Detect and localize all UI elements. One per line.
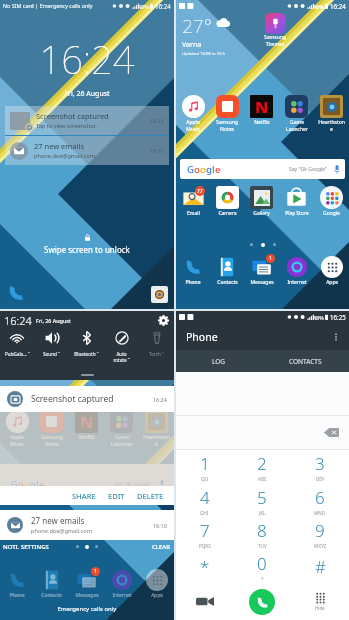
staticText: MNO xyxy=(314,510,326,516)
button[interactable]: Screenshot captured xyxy=(7,386,167,412)
button[interactable]: 1 xyxy=(176,450,233,484)
button[interactable]: # xyxy=(291,550,349,583)
button[interactable]: Game Launcher xyxy=(279,95,314,132)
button[interactable]: Samsung Notes xyxy=(210,95,244,132)
staticText: 6 xyxy=(315,486,325,509)
staticText: Fri, 26 August xyxy=(36,317,71,324)
button[interactable]: Apps xyxy=(139,569,174,599)
staticText: Torch ˇ xyxy=(149,351,164,357)
staticText: phone.doe@gmail.com xyxy=(31,527,92,535)
button[interactable]: Game Launcher xyxy=(104,412,139,447)
button[interactable]: 1 xyxy=(69,569,104,599)
button[interactable]: 0 xyxy=(233,550,291,583)
staticText: DEF xyxy=(316,476,325,482)
staticText: o xyxy=(18,478,24,486)
staticText: Google xyxy=(323,210,340,217)
button[interactable]: * xyxy=(176,550,233,583)
button[interactable]: Call xyxy=(233,583,291,620)
button[interactable]: Play Store xyxy=(279,186,314,217)
button[interactable]: Video call xyxy=(176,583,233,620)
button[interactable]: 77 xyxy=(176,186,210,217)
button[interactable]: 9 xyxy=(291,517,349,550)
staticText: GHI xyxy=(200,510,209,516)
button[interactable]: Contacts xyxy=(34,569,69,599)
staticText: Varna xyxy=(182,40,202,50)
staticText: 77 xyxy=(197,188,203,195)
button[interactable]: 7 xyxy=(176,517,233,550)
button[interactable]: Samsung Notes xyxy=(34,412,69,447)
button[interactable]: SHARE xyxy=(66,486,102,505)
button[interactable]: Internet xyxy=(104,569,139,599)
staticText: Hide xyxy=(315,605,325,611)
button[interactable]: 6 xyxy=(291,484,349,517)
button[interactable]: Camera xyxy=(210,186,244,217)
button[interactable]: Phone xyxy=(176,256,210,286)
staticText: 5 xyxy=(257,486,267,509)
staticText: Swipe screen to unlock xyxy=(44,244,130,255)
button[interactable]: CONTACTS xyxy=(262,350,349,372)
button[interactable]: Torch ˇ xyxy=(139,330,174,370)
button[interactable]: 27 new emails xyxy=(0,510,174,540)
button[interactable]: Phone xyxy=(0,569,34,599)
staticText: Updated 16:06 in 14 h xyxy=(182,51,226,57)
button[interactable]: More options xyxy=(328,329,344,345)
button[interactable]: Google xyxy=(314,186,349,217)
staticText: Samsung Notes xyxy=(216,119,238,132)
staticText: 9 xyxy=(315,519,325,542)
button[interactable]: Gallery xyxy=(244,186,279,217)
button[interactable]: 27 new emails xyxy=(5,136,169,165)
button[interactable]: 2 xyxy=(233,450,291,484)
button[interactable]: 5 xyxy=(233,484,291,517)
button[interactable]: N xyxy=(244,95,279,126)
button[interactable]: Internet xyxy=(279,256,314,286)
staticText: o xyxy=(24,478,30,486)
button[interactable]: Apple Music xyxy=(176,95,210,132)
button[interactable]: G xyxy=(180,159,345,179)
button[interactable]: Apps xyxy=(314,256,349,286)
button[interactable]: Screenshot captured xyxy=(5,106,169,135)
button[interactable]: EDIT xyxy=(102,486,131,505)
button[interactable]: NOTI. SETTINGS xyxy=(0,540,49,553)
staticText: CONTACTS xyxy=(289,357,322,366)
staticText: Apps xyxy=(326,279,338,286)
button[interactable]: Camera xyxy=(151,286,168,303)
button[interactable]: 3 xyxy=(291,450,349,484)
button[interactable]: Samsung Themes xyxy=(258,13,292,47)
button[interactable]: Hearthston e xyxy=(314,95,349,132)
button[interactable]: Hide keypad xyxy=(291,583,349,620)
staticText: Apps xyxy=(151,592,163,599)
button[interactable]: Hearthston e xyxy=(139,412,174,447)
staticText: g xyxy=(206,163,212,176)
button[interactable]: 4 xyxy=(176,484,233,517)
button[interactable]: DELETE xyxy=(131,486,170,505)
staticText: QO xyxy=(201,476,209,482)
button[interactable]: Apple Music xyxy=(0,412,34,447)
button[interactable]: Backspace xyxy=(324,428,339,437)
staticText: Phone xyxy=(186,330,218,344)
button[interactable]: LOG xyxy=(176,350,262,372)
staticText: Auto rotate ˇ xyxy=(113,351,130,363)
staticText: Internet xyxy=(112,592,132,599)
staticText: N xyxy=(255,96,269,118)
button[interactable]: Phone xyxy=(6,283,26,303)
staticText: WXYZ xyxy=(314,543,327,549)
button[interactable]: N xyxy=(69,412,104,441)
staticText: Samsung Themes xyxy=(264,34,286,47)
button[interactable]: CLEAR xyxy=(152,540,174,553)
button[interactable]: Contacts xyxy=(210,256,244,286)
button[interactable]: Sound ˇ xyxy=(34,330,69,370)
button[interactable]: PubGala... ˇ xyxy=(0,330,34,370)
staticText: Bluetooth ˇ xyxy=(74,351,99,357)
staticText: 16:24 xyxy=(155,2,171,10)
staticText: 16:25 xyxy=(330,313,346,321)
button[interactable]: Settings xyxy=(157,314,170,327)
staticText: 27 new emails xyxy=(31,515,85,526)
button[interactable]: Auto rotate ˇ xyxy=(104,330,139,370)
staticText: l xyxy=(36,478,39,486)
staticText: Contacts xyxy=(217,279,238,286)
button[interactable]: 8 xyxy=(233,517,291,550)
staticText: Samsung Notes xyxy=(41,434,63,447)
button[interactable]: Bluetooth ˇ xyxy=(69,330,104,370)
staticText: 2 xyxy=(257,452,267,475)
button[interactable]: 1 xyxy=(244,256,279,286)
